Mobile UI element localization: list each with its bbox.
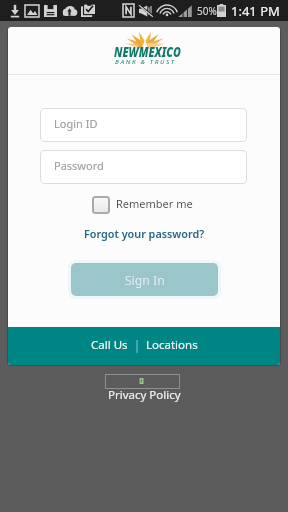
button[interactable]: Login ID xyxy=(40,108,247,142)
button[interactable]: Remember me xyxy=(88,192,197,218)
button[interactable]: Password xyxy=(40,150,247,184)
staticText: BANK & TRUST xyxy=(115,59,176,66)
staticText: Login ID xyxy=(54,116,98,131)
staticText: 1:41 PM xyxy=(231,2,280,20)
button[interactable]: Privacy Policy xyxy=(106,385,183,405)
button[interactable]: Locations xyxy=(138,330,206,362)
button[interactable]: Sign In xyxy=(71,263,218,296)
staticText: NEWMEXICO xyxy=(114,42,181,61)
staticText: Remember me xyxy=(116,196,193,211)
button[interactable]: Call Us xyxy=(83,330,136,362)
staticText: 50% xyxy=(197,4,217,18)
button[interactable]: Forgot your password? xyxy=(80,222,209,245)
button[interactable]: Secure site seal xyxy=(105,374,180,389)
staticText: Password xyxy=(54,158,104,173)
staticText: Sign In xyxy=(125,272,165,288)
